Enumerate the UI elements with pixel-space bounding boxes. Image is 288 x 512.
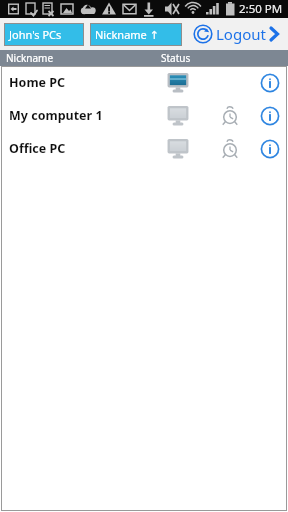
staticText: My computer 1 — [9, 107, 103, 124]
button[interactable]: Office PC — [1, 132, 287, 165]
staticText: Office PC — [9, 140, 66, 157]
staticText: Logout — [216, 24, 266, 44]
staticText: Home PC — [9, 74, 66, 91]
button[interactable]: Info — [258, 104, 282, 128]
button[interactable]: Info — [258, 137, 282, 161]
other: Refresh — [193, 24, 213, 44]
other: Offline — [165, 104, 191, 128]
button[interactable]: Refresh — [193, 18, 284, 50]
other: Offline — [165, 137, 191, 161]
button[interactable]: Info — [258, 71, 282, 95]
staticText: Status — [161, 51, 191, 65]
button[interactable]: Schedule — [218, 104, 242, 128]
button[interactable]: Nickname ↑ — [90, 23, 182, 46]
button[interactable]: Home PC — [1, 66, 287, 99]
button[interactable]: Schedule — [218, 137, 242, 161]
staticText: John's PCs — [9, 27, 62, 42]
other: Online — [165, 71, 191, 95]
staticText: Nickname — [6, 51, 54, 65]
staticText: 2:50 PM — [239, 1, 283, 17]
button[interactable]: John's PCs — [4, 23, 84, 46]
button[interactable]: My computer 1 — [1, 99, 287, 132]
staticText: Nickname ↑ — [95, 27, 159, 42]
